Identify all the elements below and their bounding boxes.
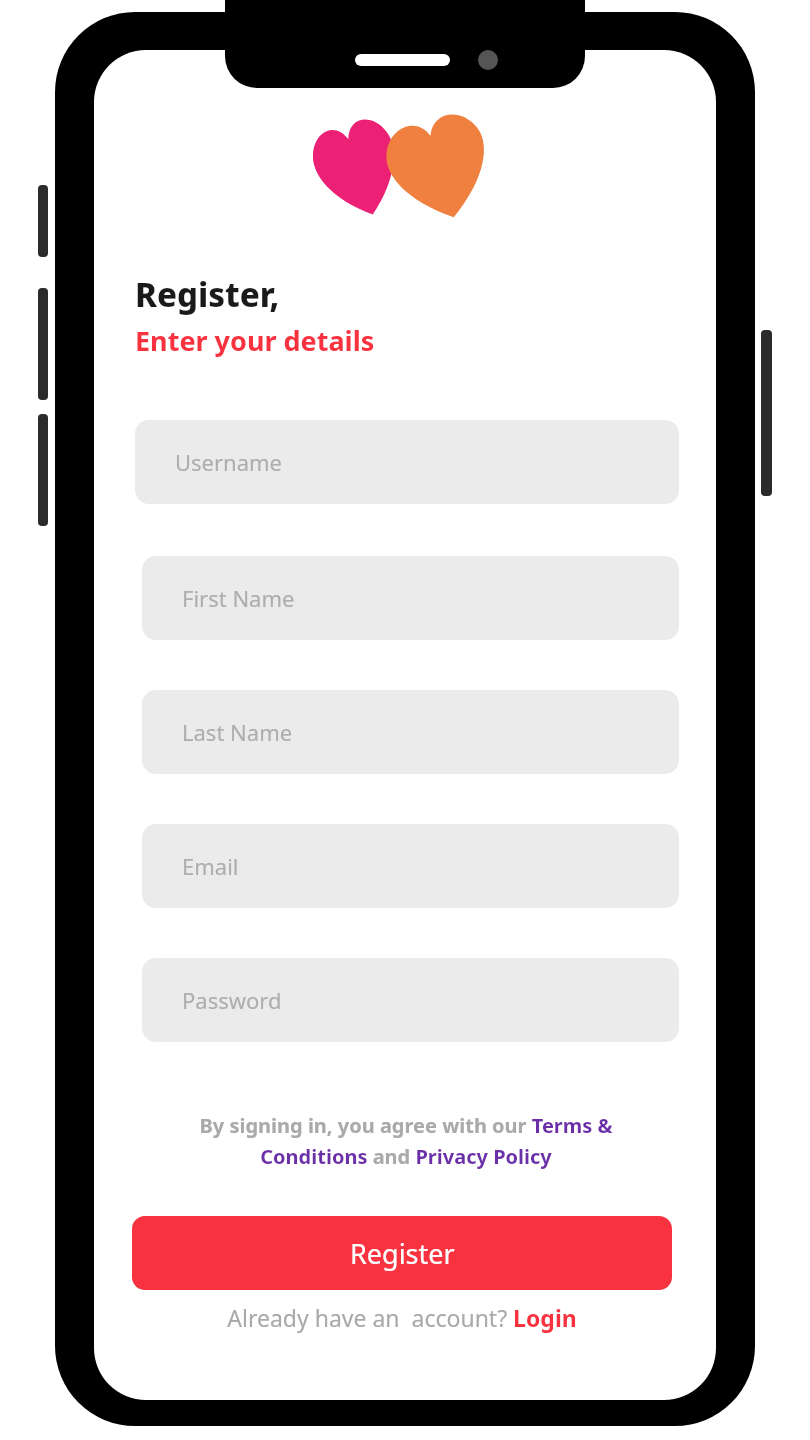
staticText: Register [350,1235,455,1272]
button[interactable]: Already have an account? Login [132,1302,672,1333]
button[interactable]: Last Name [142,690,679,774]
button[interactable]: Register [132,1216,672,1290]
staticText: Email [182,851,239,881]
staticText: Already have an account? Login [132,1302,672,1333]
staticText: Enter your details [135,322,375,359]
button[interactable]: Username [135,420,679,504]
staticText: Password [182,985,282,1015]
staticText: By signing in, you agree with our Terms … [156,1112,656,1169]
button[interactable]: By signing in, you agree with our Terms … [156,1112,656,1169]
staticText: First Name [182,583,295,613]
staticText: Last Name [182,717,293,747]
staticText: Username [175,447,283,477]
other: Front camera [478,50,498,70]
button[interactable]: First Name [142,556,679,640]
button[interactable]: Password [142,958,679,1042]
button[interactable]: Email [142,824,679,908]
staticText: Register, [135,272,280,317]
